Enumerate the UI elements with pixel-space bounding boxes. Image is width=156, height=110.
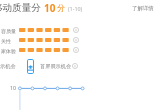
button[interactable]: 了解详情	[130, 3, 156, 14]
staticText: 家体验	[1, 48, 16, 54]
other: Info	[73, 37, 79, 43]
other: Info	[73, 47, 79, 53]
other: Info	[73, 27, 79, 33]
staticText: 关性	[1, 38, 11, 44]
button[interactable]: 容质量	[0, 27, 156, 37]
other: Info	[72, 63, 78, 69]
staticText: 首屏展示机会	[40, 63, 72, 70]
staticText: 10	[10, 84, 16, 91]
staticText: 示机会	[0, 63, 16, 70]
staticText: 分	[57, 3, 66, 13]
staticText: 10	[44, 1, 56, 15]
button[interactable]: 家体验	[0, 47, 156, 57]
button[interactable]: 首屏展示机会	[27, 59, 34, 74]
staticText: 移动质量分	[0, 2, 41, 14]
button[interactable]: 关性	[0, 37, 156, 47]
staticText: 容质量	[1, 28, 16, 34]
staticText: (1-10)	[68, 5, 83, 12]
staticText: 了解详情	[132, 5, 154, 12]
